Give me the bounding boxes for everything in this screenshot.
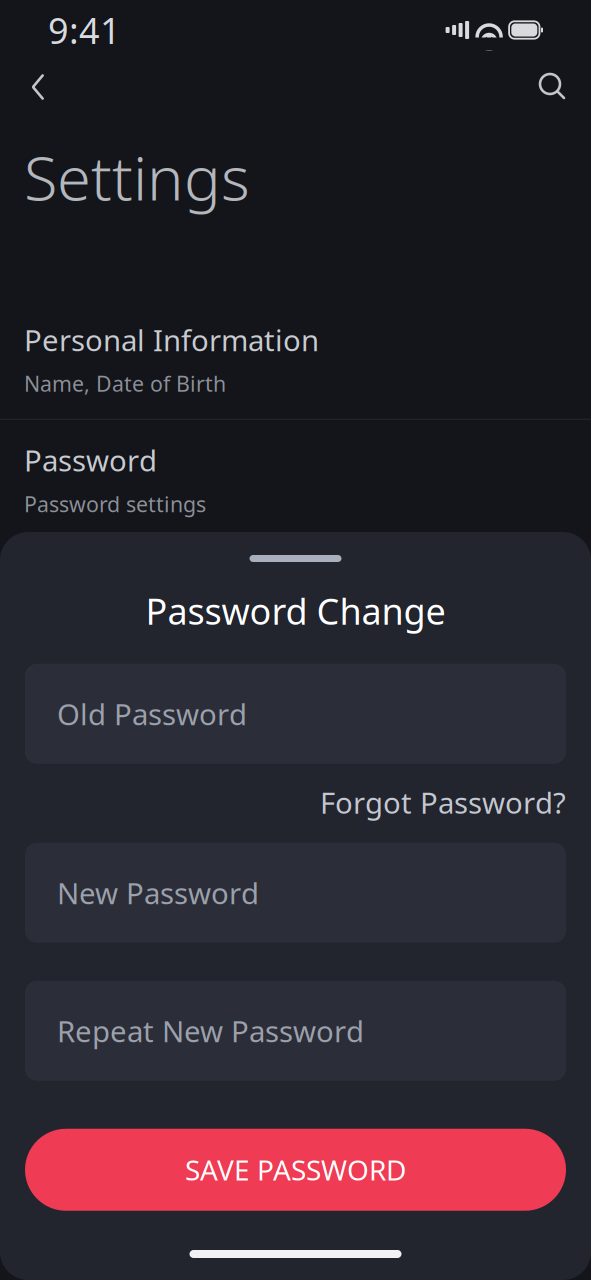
button[interactable]: Personal Information: [0, 299, 591, 419]
staticText: Personal Information: [24, 320, 319, 359]
button[interactable]: Old Password: [25, 664, 566, 764]
staticText: Password Change: [145, 587, 445, 635]
button[interactable]: Repeat New Password: [25, 981, 566, 1081]
button[interactable]: Search: [529, 63, 577, 111]
staticText: New Password: [57, 873, 259, 912]
staticText: Forgot Password?: [320, 783, 566, 822]
staticText: Old Password: [57, 694, 247, 733]
staticText: Settings: [24, 136, 250, 217]
button[interactable]: Back: [14, 63, 62, 111]
staticText: Password: [24, 441, 157, 480]
button[interactable]: SAVE PASSWORD: [25, 1129, 566, 1211]
staticText: Repeat New Password: [57, 1011, 364, 1050]
staticText: SAVE PASSWORD: [185, 1151, 406, 1188]
staticText: Password settings: [24, 490, 206, 518]
staticText: Name, Date of Birth: [24, 369, 226, 398]
button[interactable]: Password: [0, 420, 591, 539]
staticText: 9:41: [48, 6, 121, 54]
button[interactable]: New Password: [25, 843, 566, 943]
button[interactable]: Forgot Password?: [25, 764, 566, 828]
